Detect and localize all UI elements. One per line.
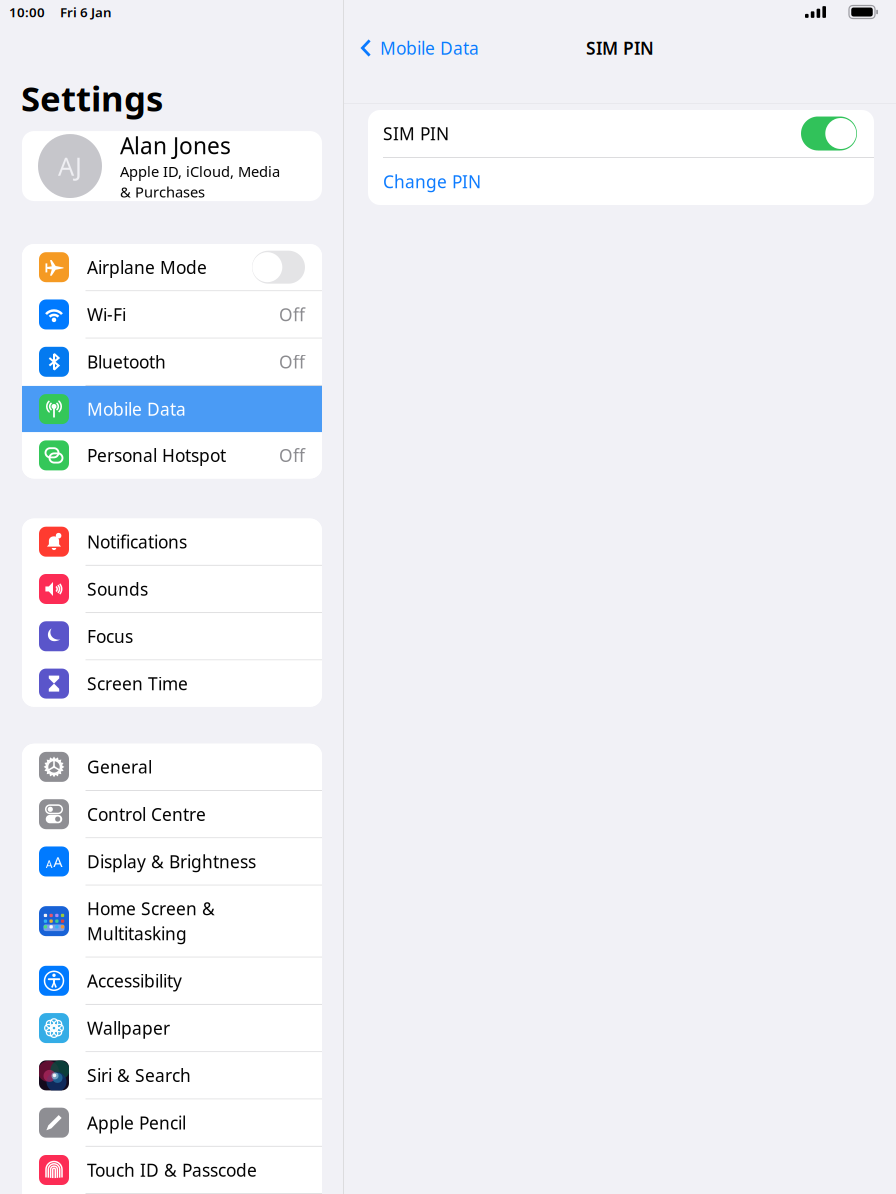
- staticText: Apple Pencil: [87, 1111, 186, 1134]
- staticText: Settings: [21, 75, 163, 121]
- button[interactable]: Focus: [22, 613, 322, 659]
- staticText: SIM PIN: [586, 36, 654, 59]
- staticText: A: [46, 857, 53, 871]
- button[interactable]: Bluetooth: [22, 339, 322, 385]
- button[interactable]: Control Centre: [22, 791, 322, 837]
- button[interactable]: General: [22, 744, 322, 790]
- staticText: Accessibility: [87, 969, 182, 992]
- staticText: Notifications: [87, 530, 187, 553]
- button[interactable]: Screen Time: [22, 660, 322, 707]
- staticText: Multitasking: [87, 922, 187, 945]
- button[interactable]: Airplane Mode: [22, 244, 322, 290]
- button[interactable]: Siri & Search: [22, 1052, 322, 1098]
- button[interactable]: Personal Hotspot: [22, 432, 322, 478]
- button[interactable]: Apple Pencil: [22, 1099, 322, 1146]
- staticText: Mobile Data: [380, 36, 479, 59]
- button[interactable]: Accessibility: [22, 958, 322, 1004]
- staticText: Display & Brightness: [87, 850, 256, 873]
- staticText: Focus: [87, 625, 133, 648]
- button[interactable]: Wi-Fi: [22, 291, 322, 338]
- button[interactable]: Mobile Data: [344, 26, 487, 70]
- staticText: Touch ID & Passcode: [87, 1158, 257, 1181]
- staticText: Control Centre: [87, 803, 206, 826]
- button[interactable]: Wallpaper: [22, 1005, 322, 1051]
- button[interactable]: SIM PIN: [801, 116, 857, 150]
- staticText: Siri & Search: [87, 1064, 191, 1087]
- button[interactable]: A: [22, 838, 322, 885]
- staticText: Home Screen &: [87, 897, 215, 920]
- staticText: General: [87, 755, 152, 778]
- button[interactable]: Notifications: [22, 518, 322, 565]
- button[interactable]: Mobile Data: [22, 386, 322, 432]
- staticText: Off: [279, 303, 305, 326]
- staticText: Apple ID, iCloud, Media: [120, 162, 280, 181]
- staticText: Wi-Fi: [87, 303, 126, 326]
- button[interactable]: Change PIN: [368, 158, 874, 205]
- staticText: Alan Jones: [120, 130, 231, 161]
- staticText: AJ: [58, 149, 82, 183]
- staticText: Off: [279, 350, 305, 373]
- staticText: Mobile Data: [87, 398, 186, 421]
- button[interactable]: Sounds: [22, 566, 322, 612]
- staticText: Airplane Mode: [87, 256, 207, 279]
- button[interactable]: Home Screen &: [22, 886, 322, 957]
- staticText: Off: [279, 444, 305, 467]
- staticText: A: [53, 852, 62, 871]
- button[interactable]: AJ: [22, 131, 322, 201]
- staticText: Bluetooth: [87, 350, 166, 373]
- staticText: Personal Hotspot: [87, 444, 226, 467]
- staticText: Wallpaper: [87, 1017, 170, 1040]
- staticText: & Purchases: [120, 182, 205, 202]
- staticText: Screen Time: [87, 672, 188, 695]
- staticText: 10:00: [9, 3, 45, 21]
- staticText: Sounds: [87, 577, 148, 600]
- staticText: Change PIN: [383, 170, 481, 193]
- staticText: Fri 6 Jan: [60, 3, 112, 21]
- staticText: SIM PIN: [383, 122, 449, 145]
- button[interactable]: Touch ID & Passcode: [22, 1147, 322, 1193]
